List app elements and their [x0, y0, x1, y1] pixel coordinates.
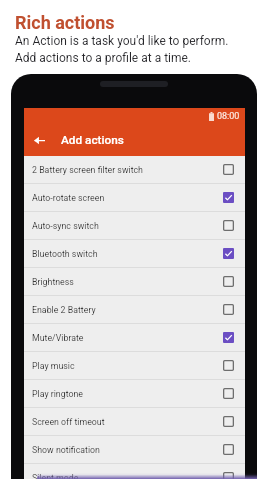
button[interactable]: Show notification — [24, 436, 245, 463]
staticText: Bluetooth switch — [32, 249, 98, 259]
button[interactable]: Auto-sync switch — [24, 212, 245, 239]
button[interactable]: Screen off timeout — [24, 408, 245, 435]
button[interactable]: 2 Battery screen filter switch — [24, 156, 245, 183]
staticText: Add actions — [61, 133, 124, 147]
staticText: Enable 2 Battery — [32, 305, 96, 315]
staticText: Silent mode — [32, 473, 79, 479]
staticText: Show notification — [32, 445, 100, 455]
button[interactable]: Play ringtone — [24, 380, 245, 407]
staticText: Auto-sync switch — [32, 221, 99, 231]
staticText: Auto-rotate screen — [32, 193, 105, 203]
staticText: Screen off timeout — [32, 417, 105, 427]
staticText: Rich actions — [15, 12, 115, 33]
button[interactable]: Enable 2 Battery — [24, 296, 245, 323]
button[interactable]: Silent mode — [24, 464, 245, 479]
staticText: 2 Battery screen filter switch — [32, 165, 143, 175]
button[interactable]: Auto-rotate screen — [24, 184, 245, 211]
staticText: 08:00 — [217, 111, 240, 122]
staticText: Play ringtone — [32, 389, 84, 399]
button[interactable]: Mute/Vibrate — [24, 324, 245, 351]
button[interactable]: Play music — [24, 352, 245, 379]
staticText: Mute/Vibrate — [32, 333, 84, 343]
staticText: Add actions to a profile at a time. — [15, 51, 192, 65]
staticText: Brightness — [32, 277, 74, 287]
button[interactable]: Navigate up — [24, 125, 54, 155]
button[interactable]: Bluetooth switch — [24, 240, 245, 267]
staticText: Play music — [32, 361, 75, 371]
staticText: An Action is a task you'd like to perfor… — [15, 34, 229, 48]
button[interactable]: Brightness — [24, 268, 245, 295]
